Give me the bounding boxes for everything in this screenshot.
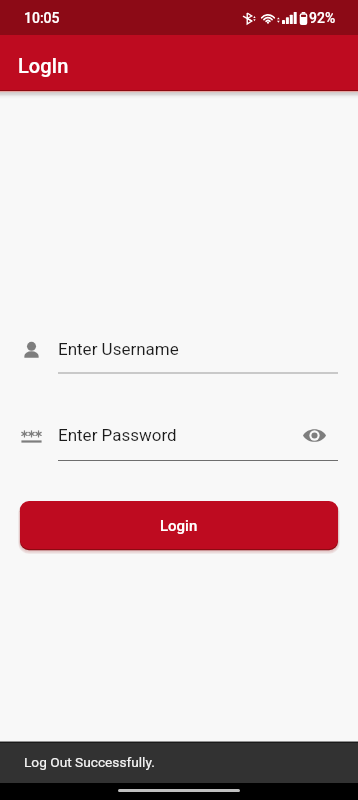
- staticText: Login: [160, 517, 198, 535]
- staticText: 10:05: [24, 10, 60, 26]
- button[interactable]: Login: [20, 501, 338, 549]
- staticText: 92%: [309, 10, 336, 26]
- staticText: Enter Password: [58, 425, 177, 445]
- staticText: Enter Username: [58, 339, 179, 359]
- staticText: Log Out Successfully.: [24, 754, 155, 770]
- button[interactable]: Show password: [300, 423, 328, 447]
- staticText: LogIn: [18, 54, 69, 77]
